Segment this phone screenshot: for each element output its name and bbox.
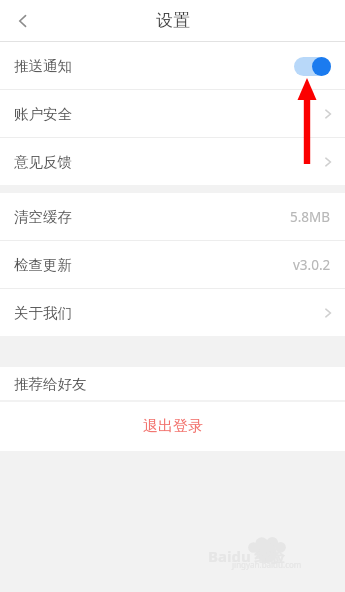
staticText: 退出登录 <box>143 417 203 436</box>
staticText: 推送通知 <box>14 57 72 75</box>
staticText: 5.8MB <box>290 208 331 226</box>
staticText: 关于我们 <box>14 304 72 322</box>
staticText: v3.0.2 <box>293 256 331 274</box>
button[interactable]: 账户安全 <box>0 90 345 137</box>
staticText: 推荐给好友 <box>14 375 87 393</box>
button[interactable]: 检查更新 <box>0 241 345 288</box>
button[interactable]: 退出登录 <box>0 402 345 451</box>
button[interactable]: 清空缓存 <box>0 193 345 240</box>
staticText: 检查更新 <box>14 256 72 274</box>
staticText: jingyan.baidu.com <box>232 559 302 570</box>
staticText: 账户安全 <box>14 105 72 123</box>
staticText: 清空缓存 <box>14 208 72 226</box>
button[interactable]: 推荐给好友 <box>0 367 345 400</box>
staticText: 意见反馈 <box>14 153 72 171</box>
staticText: Baidu 经验 <box>208 546 285 566</box>
button[interactable]: 推送通知 <box>0 42 345 89</box>
button[interactable]: 关于我们 <box>0 289 345 336</box>
staticText: 设置 <box>156 10 190 31</box>
button[interactable]: 意见反馈 <box>0 138 345 185</box>
button[interactable]: Back <box>0 0 46 41</box>
button[interactable]: Push notifications toggle <box>291 55 331 77</box>
